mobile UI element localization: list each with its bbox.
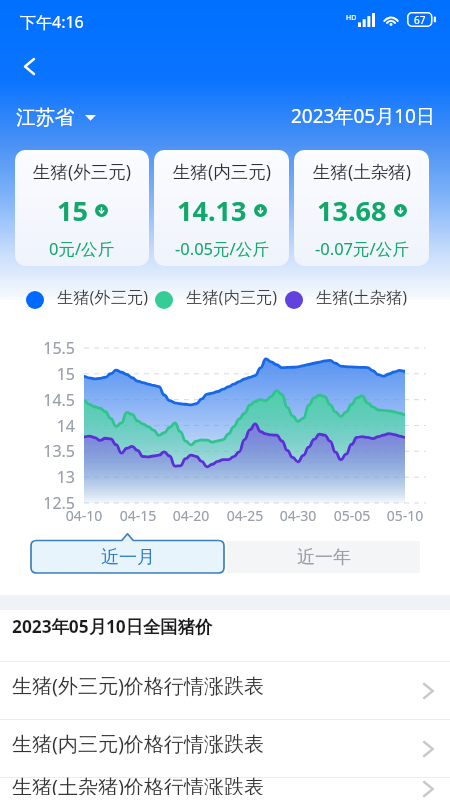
button[interactable]: 江苏省	[16, 105, 96, 130]
button[interactable]: Back	[7, 44, 51, 88]
staticText: 生猪(土杂猪)	[316, 286, 408, 308]
staticText: 04-20	[161, 506, 221, 525]
staticText: 14	[14, 415, 75, 437]
staticText: 生猪(外三元)价格行情涨跌表	[12, 672, 264, 699]
button[interactable]: 生猪(外三元)价格行情涨跌表	[0, 662, 450, 719]
button[interactable]: 近一年	[227, 541, 420, 573]
button[interactable]: 生猪(内三元)价格行情涨跌表	[0, 720, 450, 777]
staticText: 13.68	[317, 192, 387, 229]
staticText: 2023年05月10日全国猪价	[12, 615, 450, 639]
staticText: 生猪(内三元)价格行情涨跌表	[12, 730, 264, 757]
staticText: 12.5	[14, 492, 75, 514]
button[interactable]: 近一月	[31, 533, 224, 573]
staticText: 13.5	[14, 440, 75, 462]
staticText: 15	[57, 192, 88, 229]
staticText: 15	[14, 363, 75, 385]
staticText: 14.5	[14, 389, 75, 411]
staticText: 67	[414, 13, 426, 27]
staticText: -0.07元/公斤	[315, 237, 409, 260]
staticText: 生猪(土杂猪)价格行情涨跌表	[12, 773, 264, 795]
button[interactable]: 生猪(外三元)	[15, 150, 149, 266]
staticText: 04-10	[54, 506, 114, 525]
staticText: 近一年	[297, 546, 351, 569]
button[interactable]: 生猪(内三元)	[154, 150, 289, 266]
staticText: -0.05元/公斤	[175, 237, 269, 260]
staticText: 05-05	[322, 506, 382, 525]
staticText: 生猪(内三元)	[173, 159, 271, 183]
staticText: 05-10	[375, 506, 435, 525]
button[interactable]: 生猪(土杂猪)	[294, 150, 429, 266]
staticText: 下午4:16	[20, 11, 84, 33]
button[interactable]: 生猪(土杂猪)价格行情涨跌表	[0, 778, 450, 800]
staticText: 生猪(外三元)	[57, 286, 149, 308]
staticText: 04-15	[108, 506, 168, 525]
staticText: 江苏省	[16, 105, 75, 130]
staticText: 生猪(内三元)	[186, 286, 278, 308]
staticText: 0元/公斤	[49, 237, 115, 260]
staticText: 14.13	[177, 192, 247, 229]
staticText: 生猪(外三元)	[33, 159, 131, 183]
staticText: 04-30	[268, 506, 328, 525]
staticText: HD	[346, 13, 357, 23]
staticText: 13	[14, 466, 75, 488]
staticText: 生猪(土杂猪)	[313, 159, 411, 183]
staticText: 04-25	[215, 506, 275, 525]
staticText: 2023年05月10日	[291, 103, 435, 129]
staticText: 近一月	[101, 546, 155, 569]
staticText: 15.5	[14, 337, 75, 359]
